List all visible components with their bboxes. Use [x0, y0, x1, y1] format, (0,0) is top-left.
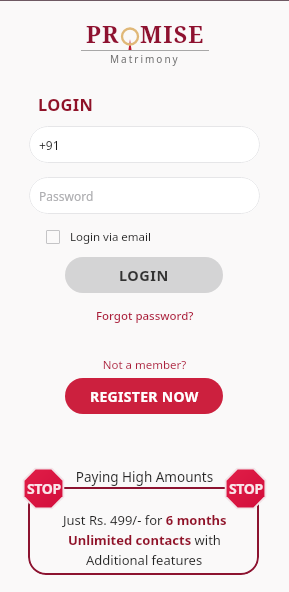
other: Stop: [223, 466, 268, 511]
staticText: Not a member?: [0, 357, 289, 373]
staticText: STOP: [229, 479, 263, 498]
staticText: LOGIN: [38, 93, 94, 115]
button[interactable]: REGISTER NOW: [65, 378, 223, 414]
staticText: REGISTER NOW: [90, 387, 199, 406]
staticText: Forgot password?: [96, 308, 194, 324]
staticText: PR: [86, 18, 120, 49]
button[interactable]: +91: [29, 126, 260, 163]
button[interactable]: Forgot password?: [90, 306, 200, 326]
button[interactable]: [28, 487, 259, 575]
staticText: LOGIN: [119, 265, 169, 285]
button[interactable]: Password: [29, 177, 260, 214]
staticText: Password: [39, 188, 94, 204]
staticText: STOP: [27, 479, 61, 498]
staticText: Paying High Amounts: [0, 468, 289, 486]
other: Stop: [21, 466, 66, 511]
button[interactable]: LOGIN: [65, 257, 223, 293]
staticText: MISE: [140, 18, 205, 49]
staticText: Just Rs. 499/- for 6 months: [63, 511, 227, 529]
staticText: Matrimony: [110, 52, 180, 66]
staticText: +91: [39, 137, 60, 153]
button[interactable]: Login via email: [46, 227, 151, 247]
staticText: Unlimited contacts with: [68, 531, 221, 549]
staticText: Login via email: [70, 229, 151, 245]
staticText: Additional features: [86, 551, 203, 569]
